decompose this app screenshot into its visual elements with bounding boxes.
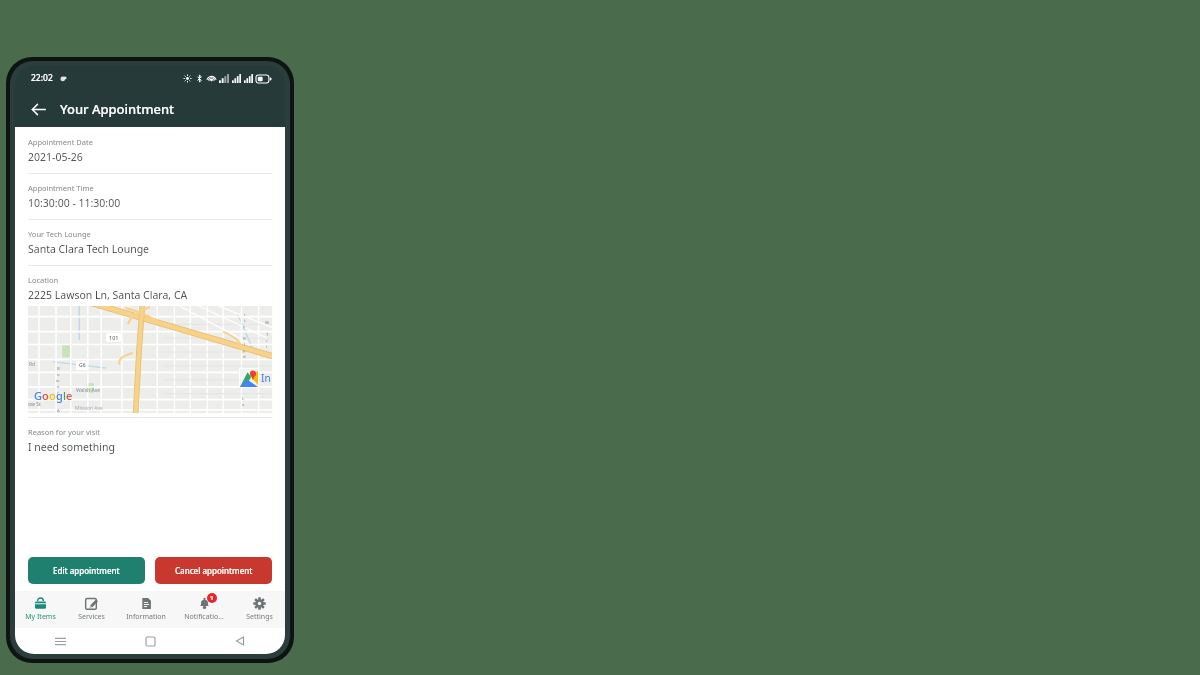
- staticText: l: [63, 388, 66, 403]
- staticText: Reason for your visit: [28, 427, 101, 437]
- staticText: e: [243, 324, 246, 330]
- staticText: w: [56, 378, 60, 384]
- staticText: L: [242, 396, 245, 402]
- staticText: i: [266, 344, 268, 350]
- staticText: Appointment Date: [28, 137, 93, 147]
- staticText: e: [66, 388, 73, 403]
- staticText: Walsh Ave: [76, 387, 100, 394]
- staticText: d: [243, 354, 246, 360]
- staticText: Location: [28, 275, 59, 285]
- staticText: My Items: [25, 612, 56, 622]
- staticText: o: [49, 388, 56, 403]
- staticText: ow St: [28, 401, 41, 408]
- staticText: W: [265, 320, 269, 326]
- staticText: r: [266, 338, 268, 344]
- staticText: Mission Ave: [75, 405, 103, 412]
- staticText: I need something: [28, 440, 115, 454]
- staticText: Notificatio…: [184, 612, 224, 622]
- button[interactable]: Recent apps: [15, 628, 105, 654]
- button[interactable]: Home: [105, 628, 195, 654]
- staticText: l: [244, 342, 246, 348]
- staticText: Appointment Time: [28, 183, 94, 193]
- staticText: B: [57, 366, 60, 372]
- staticText: 22:02: [31, 72, 53, 84]
- staticText: a: [242, 402, 245, 408]
- staticText: e: [57, 384, 60, 390]
- staticText: Cancel appointment: [175, 565, 253, 576]
- staticText: v: [243, 348, 246, 354]
- staticText: s: [57, 396, 60, 402]
- button[interactable]: Services: [66, 591, 117, 628]
- staticText: In: [261, 371, 271, 385]
- button[interactable]: Map of 2225 Lawson Ln, Santa Clara, CA: [28, 306, 272, 413]
- staticText: o: [42, 388, 49, 403]
- staticText: 2225 Lawson Ln, Santa Clara, CA: [28, 288, 188, 302]
- button[interactable]: Edit appointment: [28, 557, 145, 584]
- staticText: Your Appointment: [60, 100, 175, 118]
- staticText: r: [57, 390, 59, 396]
- staticText: G6: [79, 362, 86, 369]
- staticText: Rd: [29, 361, 36, 368]
- staticText: Your Tech Lounge: [28, 229, 91, 239]
- staticText: G: [34, 388, 42, 403]
- button[interactable]: Settings: [233, 591, 285, 628]
- button[interactable]: Cancel appointment: [155, 557, 272, 584]
- button[interactable]: Back: [23, 94, 53, 124]
- button[interactable]: Information: [117, 591, 175, 628]
- staticText: e: [242, 384, 245, 390]
- staticText: [244, 330, 246, 336]
- staticText: 101: [109, 334, 119, 341]
- staticText: Santa Clara Tech Lounge: [28, 242, 150, 256]
- staticText: [57, 402, 59, 408]
- staticText: r: [244, 312, 246, 318]
- staticText: A: [57, 408, 60, 413]
- button[interactable]: My Items: [15, 591, 66, 628]
- staticText: B: [243, 336, 246, 342]
- staticText: 1: [210, 594, 214, 602]
- staticText: 10:30:00 - 11:30:00: [28, 196, 121, 210]
- staticText: 2021-05-26: [28, 150, 83, 164]
- staticText: Edit appointment: [53, 565, 120, 576]
- button[interactable]: 1: [175, 591, 233, 628]
- staticText: Information: [126, 612, 166, 622]
- staticText: T: [266, 332, 269, 338]
- staticText: Settings: [246, 612, 273, 622]
- staticText: t: [244, 318, 246, 324]
- staticText: o: [57, 372, 60, 378]
- button[interactable]: Back: [195, 628, 285, 654]
- staticText: [266, 326, 268, 332]
- staticText: g: [56, 388, 63, 403]
- staticText: Services: [78, 612, 105, 622]
